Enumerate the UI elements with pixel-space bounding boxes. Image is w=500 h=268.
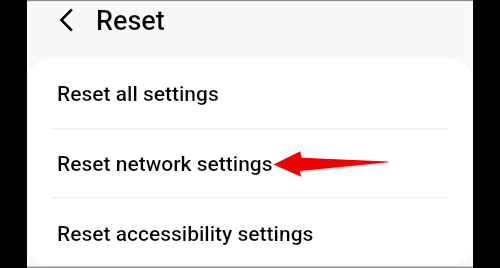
button[interactable]: Reset network settings xyxy=(27,130,473,199)
staticText: Reset xyxy=(96,5,165,37)
staticText: Reset network settings xyxy=(57,152,273,177)
button[interactable]: Reset all settings xyxy=(27,59,473,129)
button[interactable]: Back xyxy=(48,2,84,38)
button[interactable]: Reset accessibility settings xyxy=(27,202,473,266)
staticText: Reset accessibility settings xyxy=(57,222,314,247)
staticText: Reset all settings xyxy=(57,82,219,107)
